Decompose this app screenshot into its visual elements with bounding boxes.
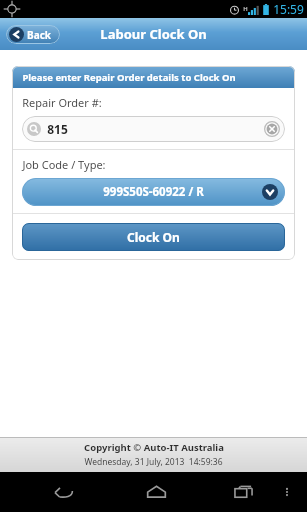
staticText: Clock On bbox=[127, 229, 180, 245]
staticText: 815 bbox=[47, 121, 68, 137]
button[interactable]: Back bbox=[48, 476, 80, 508]
button[interactable]: 999S50S-60922 / R bbox=[22, 178, 285, 206]
staticText: H bbox=[243, 5, 248, 13]
button[interactable]: 815 bbox=[22, 116, 285, 142]
button[interactable]: Recent apps bbox=[227, 476, 259, 508]
staticText: 15:59 bbox=[273, 1, 304, 17]
staticText: Copyright © Auto-IT Australia bbox=[84, 441, 224, 454]
staticText: Wednesday, 31 July, 2013 14:59:36 bbox=[84, 456, 223, 468]
button[interactable]: Home bbox=[140, 476, 172, 508]
staticText: Repair Order #: bbox=[22, 95, 102, 110]
button[interactable]: Clear bbox=[264, 121, 280, 137]
staticText: Job Code / Type: bbox=[22, 157, 106, 172]
button[interactable]: Back bbox=[6, 25, 60, 44]
staticText: Labour Clock On bbox=[100, 25, 207, 43]
staticText: 999S50S-60922 / R bbox=[103, 184, 204, 200]
button[interactable]: Menu bbox=[275, 480, 299, 504]
button[interactable]: Clock On bbox=[22, 223, 285, 251]
staticText: Please enter Repair Order details to Clo… bbox=[22, 71, 236, 84]
staticText: Back bbox=[27, 28, 51, 42]
